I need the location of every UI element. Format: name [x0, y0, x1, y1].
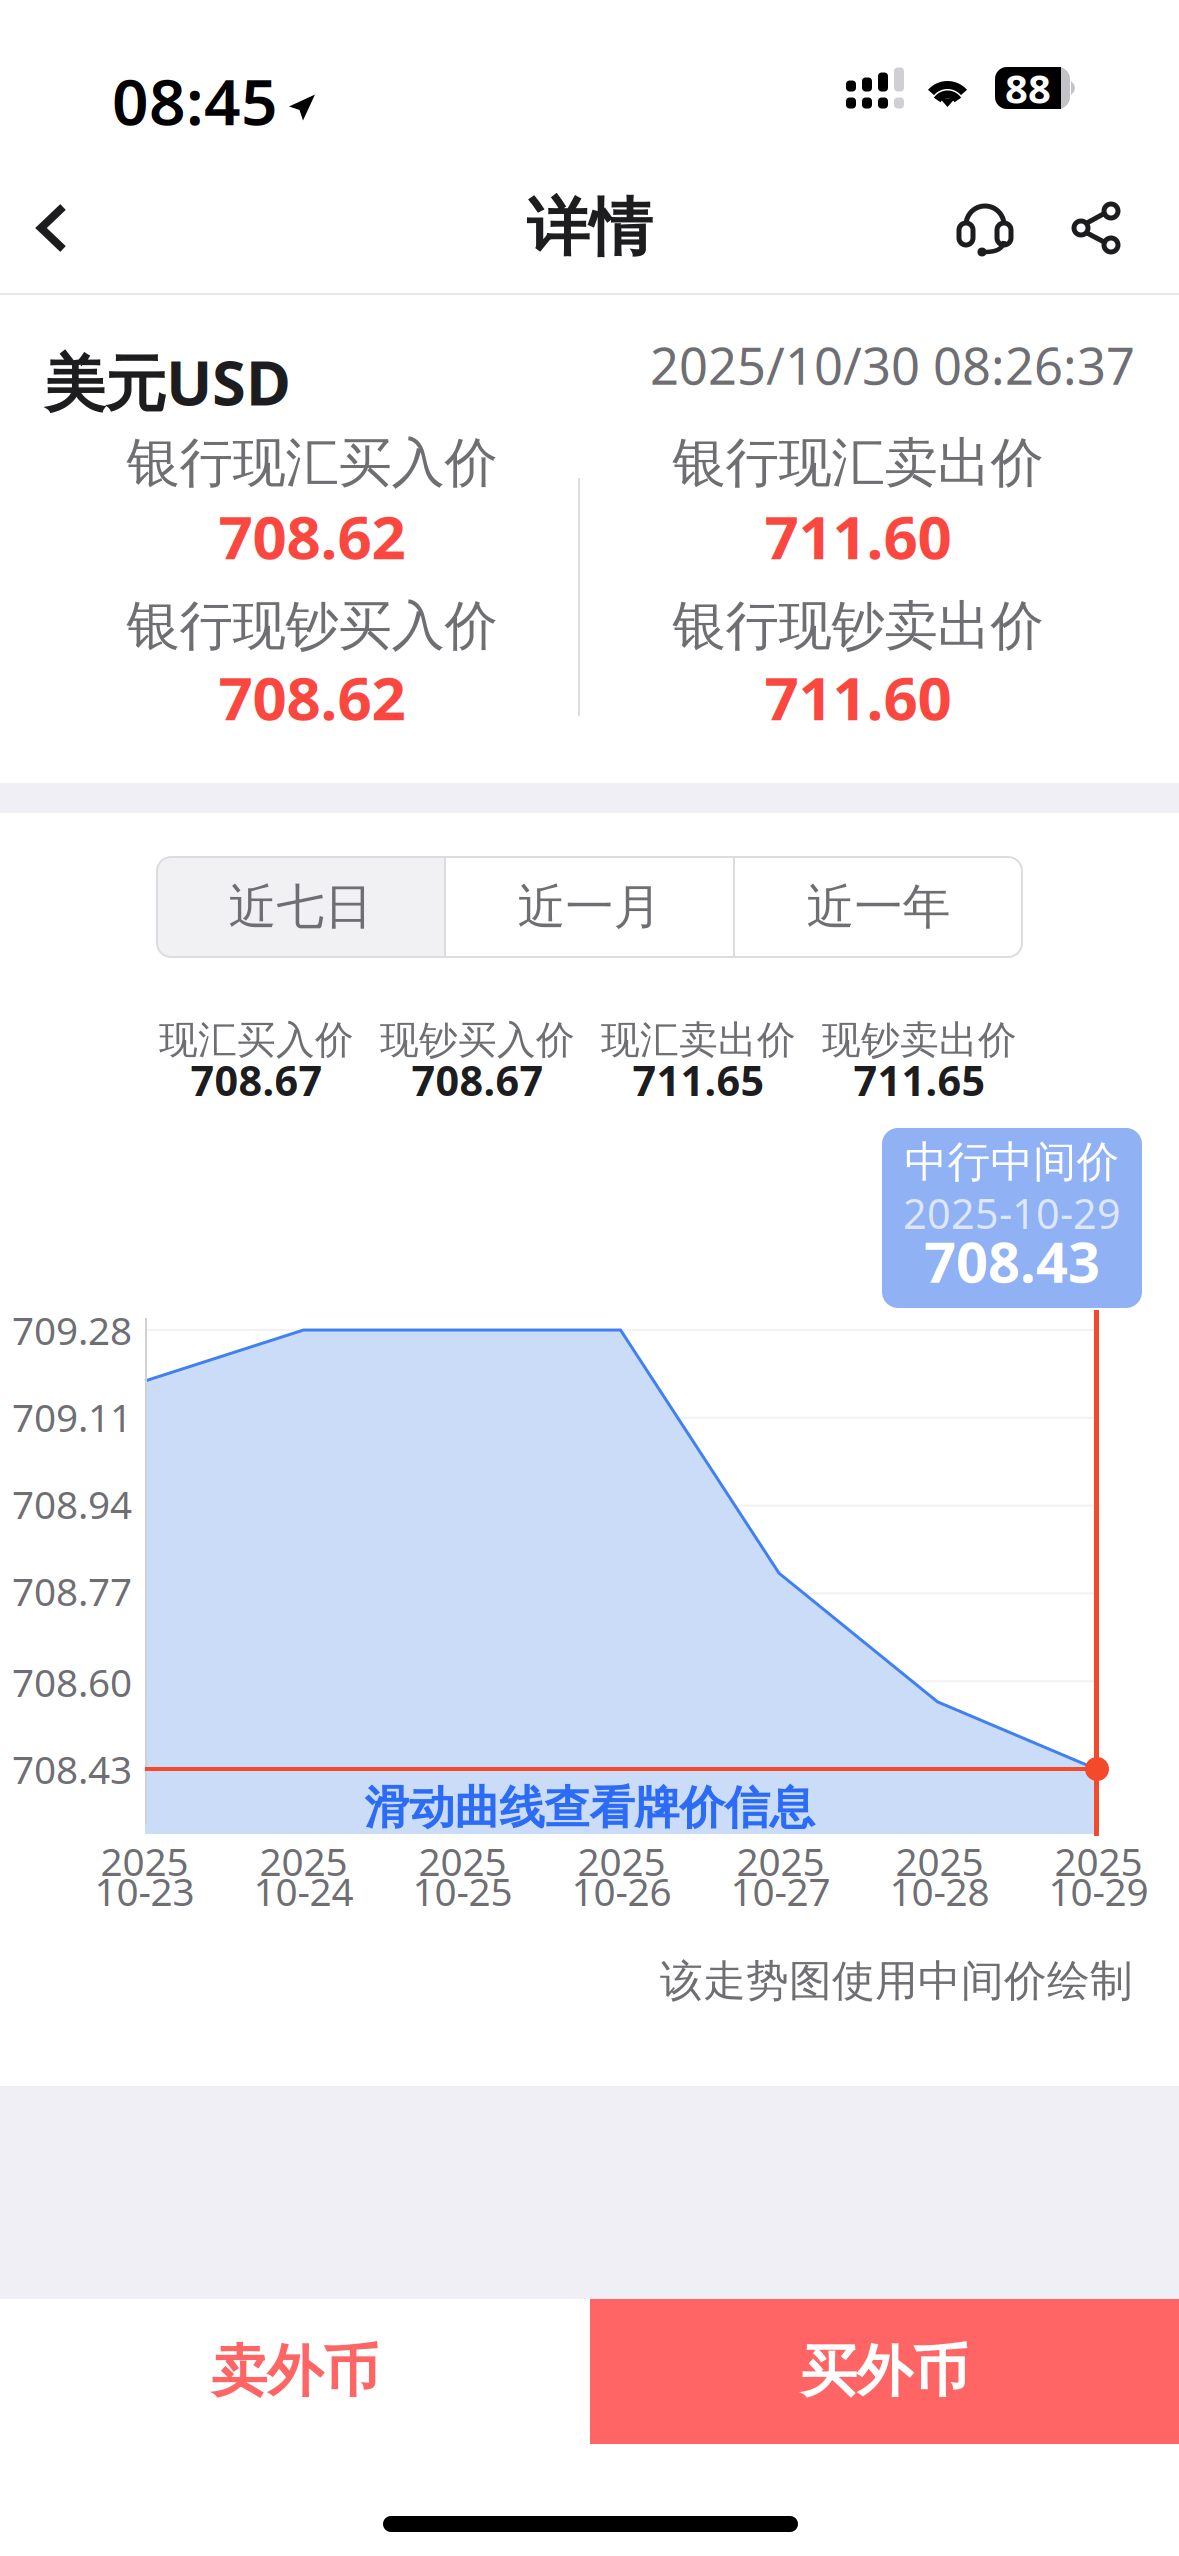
staticText: 现钞买入价 — [380, 1016, 575, 1064]
staticText: 卖外币 — [211, 2337, 379, 2406]
staticText: 滑动曲线查看牌价信息 — [364, 1780, 814, 1836]
staticText: 2025 — [736, 1835, 824, 1887]
staticText: 08:45 — [112, 58, 278, 143]
button[interactable]: 卖外币 — [0, 2299, 590, 2444]
staticText: 银行现钞买入价 — [126, 593, 497, 659]
staticText: 2025 — [895, 1835, 983, 1887]
staticText: 10-27 — [730, 1865, 830, 1917]
staticText: 708.60 — [12, 1656, 132, 1708]
staticText: 2025-10-29 — [903, 1186, 1121, 1240]
staticText: 10-29 — [1048, 1865, 1148, 1917]
staticText: 708.67 — [411, 1053, 543, 1107]
staticText: 买外币 — [800, 2337, 968, 2406]
staticText: 708.67 — [190, 1053, 322, 1107]
staticText: 近一月 — [517, 877, 661, 936]
staticText: 10-23 — [94, 1865, 194, 1917]
button[interactable]: Back — [0, 176, 104, 280]
staticText: 711.65 — [853, 1053, 985, 1107]
staticText: 10-28 — [889, 1865, 989, 1917]
staticText: 2025 — [577, 1835, 665, 1887]
staticText: 708.43 — [924, 1224, 1100, 1298]
staticText: 708.43 — [12, 1743, 132, 1795]
staticText: 709.28 — [12, 1304, 132, 1356]
staticText: 708.62 — [218, 496, 405, 576]
staticText: 10-26 — [571, 1865, 671, 1917]
staticText: 现汇买入价 — [159, 1016, 354, 1064]
staticText: 10-25 — [412, 1865, 512, 1917]
staticText: 711.60 — [764, 496, 951, 576]
staticText: 708.94 — [12, 1478, 132, 1530]
staticText: 711.60 — [764, 657, 951, 737]
staticText: 银行现汇买入价 — [126, 430, 497, 496]
button[interactable]: 近七日 — [157, 857, 444, 957]
staticText: 现汇卖出价 — [601, 1016, 796, 1064]
staticText: 近七日 — [228, 877, 372, 936]
staticText: 银行现汇卖出价 — [672, 430, 1043, 496]
staticText: 详情 — [526, 189, 652, 266]
staticText: 中行中间价 — [904, 1136, 1119, 1188]
staticText: 708.62 — [218, 657, 405, 737]
button[interactable]: 近一月 — [446, 857, 733, 957]
staticText: 709.11 — [12, 1391, 132, 1443]
button[interactable]: 买外币 — [590, 2299, 1179, 2444]
staticText: 2025 — [418, 1835, 506, 1887]
staticText: 88 — [1005, 61, 1051, 114]
staticText: 2025 — [259, 1835, 347, 1887]
staticText: 现钞卖出价 — [822, 1016, 1017, 1064]
staticText: 美元USD — [44, 341, 291, 422]
staticText: 该走势图使用中间价绘制 — [660, 1955, 1133, 2007]
staticText: 10-24 — [253, 1865, 353, 1917]
button[interactable]: Customer service — [937, 176, 1033, 280]
staticText: 711.65 — [632, 1053, 764, 1107]
staticText: 708.77 — [12, 1565, 132, 1617]
staticText: 2025/10/30 08:26:37 — [650, 331, 1135, 399]
button[interactable]: 近一年 — [735, 857, 1022, 957]
staticText: 2025 — [1054, 1835, 1142, 1887]
staticText: 银行现钞卖出价 — [672, 593, 1043, 659]
staticText: 近一年 — [806, 877, 950, 936]
staticText: 2025 — [100, 1835, 188, 1887]
button[interactable]: Share — [1050, 176, 1146, 280]
